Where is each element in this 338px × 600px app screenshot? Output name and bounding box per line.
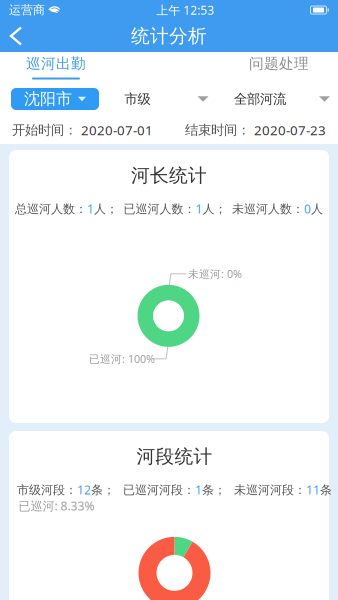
staticText: 11 [306,482,320,498]
staticText: 1 [195,201,202,217]
staticText: 已巡河: 100% [89,352,155,366]
staticText: 2020-07-01 [81,121,153,139]
staticText: 河长统计 [131,164,207,187]
staticText: ： [65,482,77,497]
staticText: 1 [195,482,202,498]
staticText: ： [183,201,195,216]
button[interactable]: 市级 [114,84,208,114]
staticText: 统计分析 [131,24,207,47]
staticText: 总巡河人数 [15,201,75,216]
staticText: 巡河出勤 [26,54,86,72]
staticText: 0 [304,201,311,217]
staticText: 市级河段 [17,482,65,497]
button[interactable]: 全部河流 [224,84,330,114]
staticText: 条； [202,482,226,497]
staticText: ： [292,201,304,216]
staticText: 全部河流 [234,91,286,107]
button[interactable]: 巡河出勤 [0,52,96,82]
staticText: 未巡河人数 [232,201,292,216]
staticText: 已巡河: 8.33% [18,498,94,514]
staticText: 已巡河河段 [123,482,183,497]
staticText: 上午 12:53 [156,2,214,18]
staticText: 问题处理 [249,54,309,72]
staticText: 条； [91,482,115,497]
staticText: 河段统计 [136,445,212,468]
staticText: 未巡河: 0% [188,267,242,281]
button[interactable]: 问题处理 [239,52,338,82]
staticText: 条 [320,482,332,497]
staticText: ： [183,482,195,497]
button[interactable]: 沈阳市 [11,88,99,110]
button[interactable]: 开始时间： [12,116,153,144]
staticText: 开始时间： [12,122,77,138]
staticText: 人； [202,201,226,216]
staticText: 2020-07-23 [254,121,326,139]
staticText: 未巡河河段 [234,482,294,497]
staticText: ： [294,482,306,497]
button[interactable]: 结束时间： [185,116,326,144]
button[interactable]: 返回 [0,20,35,52]
staticText: 市级 [124,91,150,107]
staticText: 人； [94,201,118,216]
staticText: 1 [87,201,94,217]
staticText: 结束时间： [185,122,250,138]
staticText: 人 [311,201,323,216]
staticText: 沈阳市 [24,89,72,109]
staticText: ： [75,201,87,216]
staticText: 已巡河人数 [123,201,183,216]
staticText: 运营商 [9,3,45,17]
staticText: 12 [77,482,91,498]
